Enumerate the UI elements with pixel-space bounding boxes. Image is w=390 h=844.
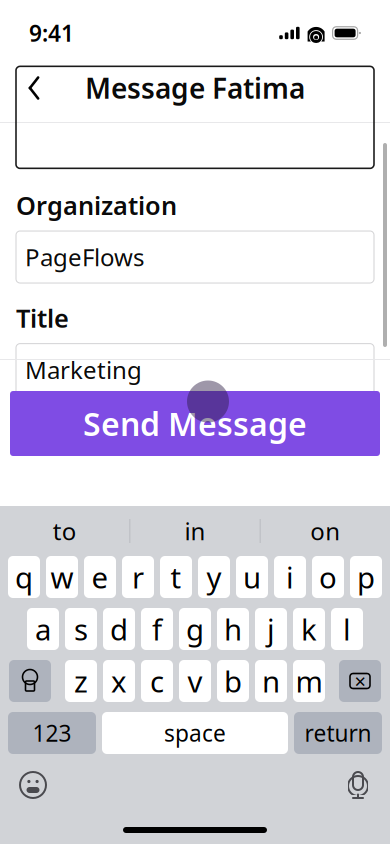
staticText: 123 — [32, 718, 71, 748]
staticText: i — [286, 557, 294, 596]
button[interactable]: n — [255, 660, 287, 702]
staticText: j — [267, 609, 275, 648]
button[interactable]: c — [141, 660, 173, 702]
staticText: r — [132, 557, 144, 596]
button[interactable]: Delete — [339, 660, 381, 702]
button[interactable]: p — [350, 556, 382, 598]
staticText: z — [74, 661, 88, 700]
button[interactable]: b — [217, 660, 249, 702]
staticText: return — [304, 718, 371, 748]
staticText: a — [35, 609, 51, 648]
button[interactable]: on — [261, 507, 390, 555]
staticText: q — [15, 557, 33, 596]
button[interactable]: Shift — [9, 660, 51, 702]
staticText: in — [184, 515, 205, 547]
staticText: s — [74, 609, 88, 648]
button[interactable]: z — [65, 660, 97, 702]
button[interactable]: q — [8, 556, 40, 598]
staticText: n — [262, 661, 280, 700]
staticText: Marketing — [25, 354, 142, 386]
button[interactable]: Marketing — [16, 344, 374, 396]
staticText: p — [357, 557, 375, 596]
button[interactable]: i — [274, 556, 306, 598]
staticText: Organization — [16, 188, 177, 222]
button[interactable]: Dictate — [344, 769, 372, 801]
button[interactable]: to — [0, 507, 129, 555]
staticText: m — [295, 661, 322, 700]
staticText: × — [354, 668, 365, 694]
button[interactable]: in — [130, 507, 260, 555]
button[interactable]: PageFlows — [16, 231, 374, 283]
staticText: h — [224, 609, 242, 648]
button[interactable]: Emoji — [18, 770, 48, 800]
button[interactable]: r — [122, 556, 154, 598]
button[interactable]: g — [179, 608, 211, 650]
button[interactable]: t — [160, 556, 192, 598]
button[interactable]: s — [65, 608, 97, 650]
button[interactable]: h — [217, 608, 249, 650]
staticText: o — [319, 557, 337, 596]
staticText: Send Message — [83, 402, 307, 445]
staticText: d — [110, 609, 128, 648]
button[interactable]: l — [331, 608, 363, 650]
staticText: g — [186, 609, 204, 648]
staticText: on — [310, 515, 340, 547]
staticText: v — [187, 661, 202, 700]
staticText: x — [111, 661, 127, 700]
staticText: w — [50, 557, 73, 596]
staticText: k — [301, 609, 317, 648]
button[interactable]: y — [198, 556, 230, 598]
button[interactable]: k — [293, 608, 325, 650]
button[interactable]: v — [179, 660, 211, 702]
staticText: to — [53, 515, 77, 547]
button[interactable]: space — [102, 712, 288, 754]
staticText: t — [170, 557, 181, 596]
button[interactable]: 123 — [8, 712, 96, 754]
button[interactable]: w — [46, 556, 78, 598]
button[interactable]: m — [293, 660, 325, 702]
staticText: space — [164, 718, 226, 748]
button[interactable]: return — [294, 712, 382, 754]
staticText: y — [206, 557, 221, 596]
button[interactable]: a — [27, 608, 59, 650]
button[interactable]: f — [141, 608, 173, 650]
button[interactable]: Send Message — [10, 391, 380, 456]
staticText: l — [343, 609, 351, 648]
staticText: Message Fatima — [85, 69, 305, 107]
staticText: b — [224, 661, 242, 700]
button[interactable]: u — [236, 556, 268, 598]
button[interactable]: j — [255, 608, 287, 650]
staticText: e — [91, 557, 108, 596]
button[interactable]: d — [103, 608, 135, 650]
staticText: Title — [16, 301, 69, 335]
staticText: c — [150, 661, 164, 700]
staticText: 9:41 — [29, 18, 74, 48]
button[interactable]: o — [312, 556, 344, 598]
staticText: u — [243, 557, 261, 596]
button[interactable]: x — [103, 660, 135, 702]
button[interactable]: e — [84, 556, 116, 598]
button[interactable]: Back — [8, 65, 60, 111]
staticText: PageFlows — [25, 241, 144, 273]
staticText: f — [152, 609, 162, 648]
